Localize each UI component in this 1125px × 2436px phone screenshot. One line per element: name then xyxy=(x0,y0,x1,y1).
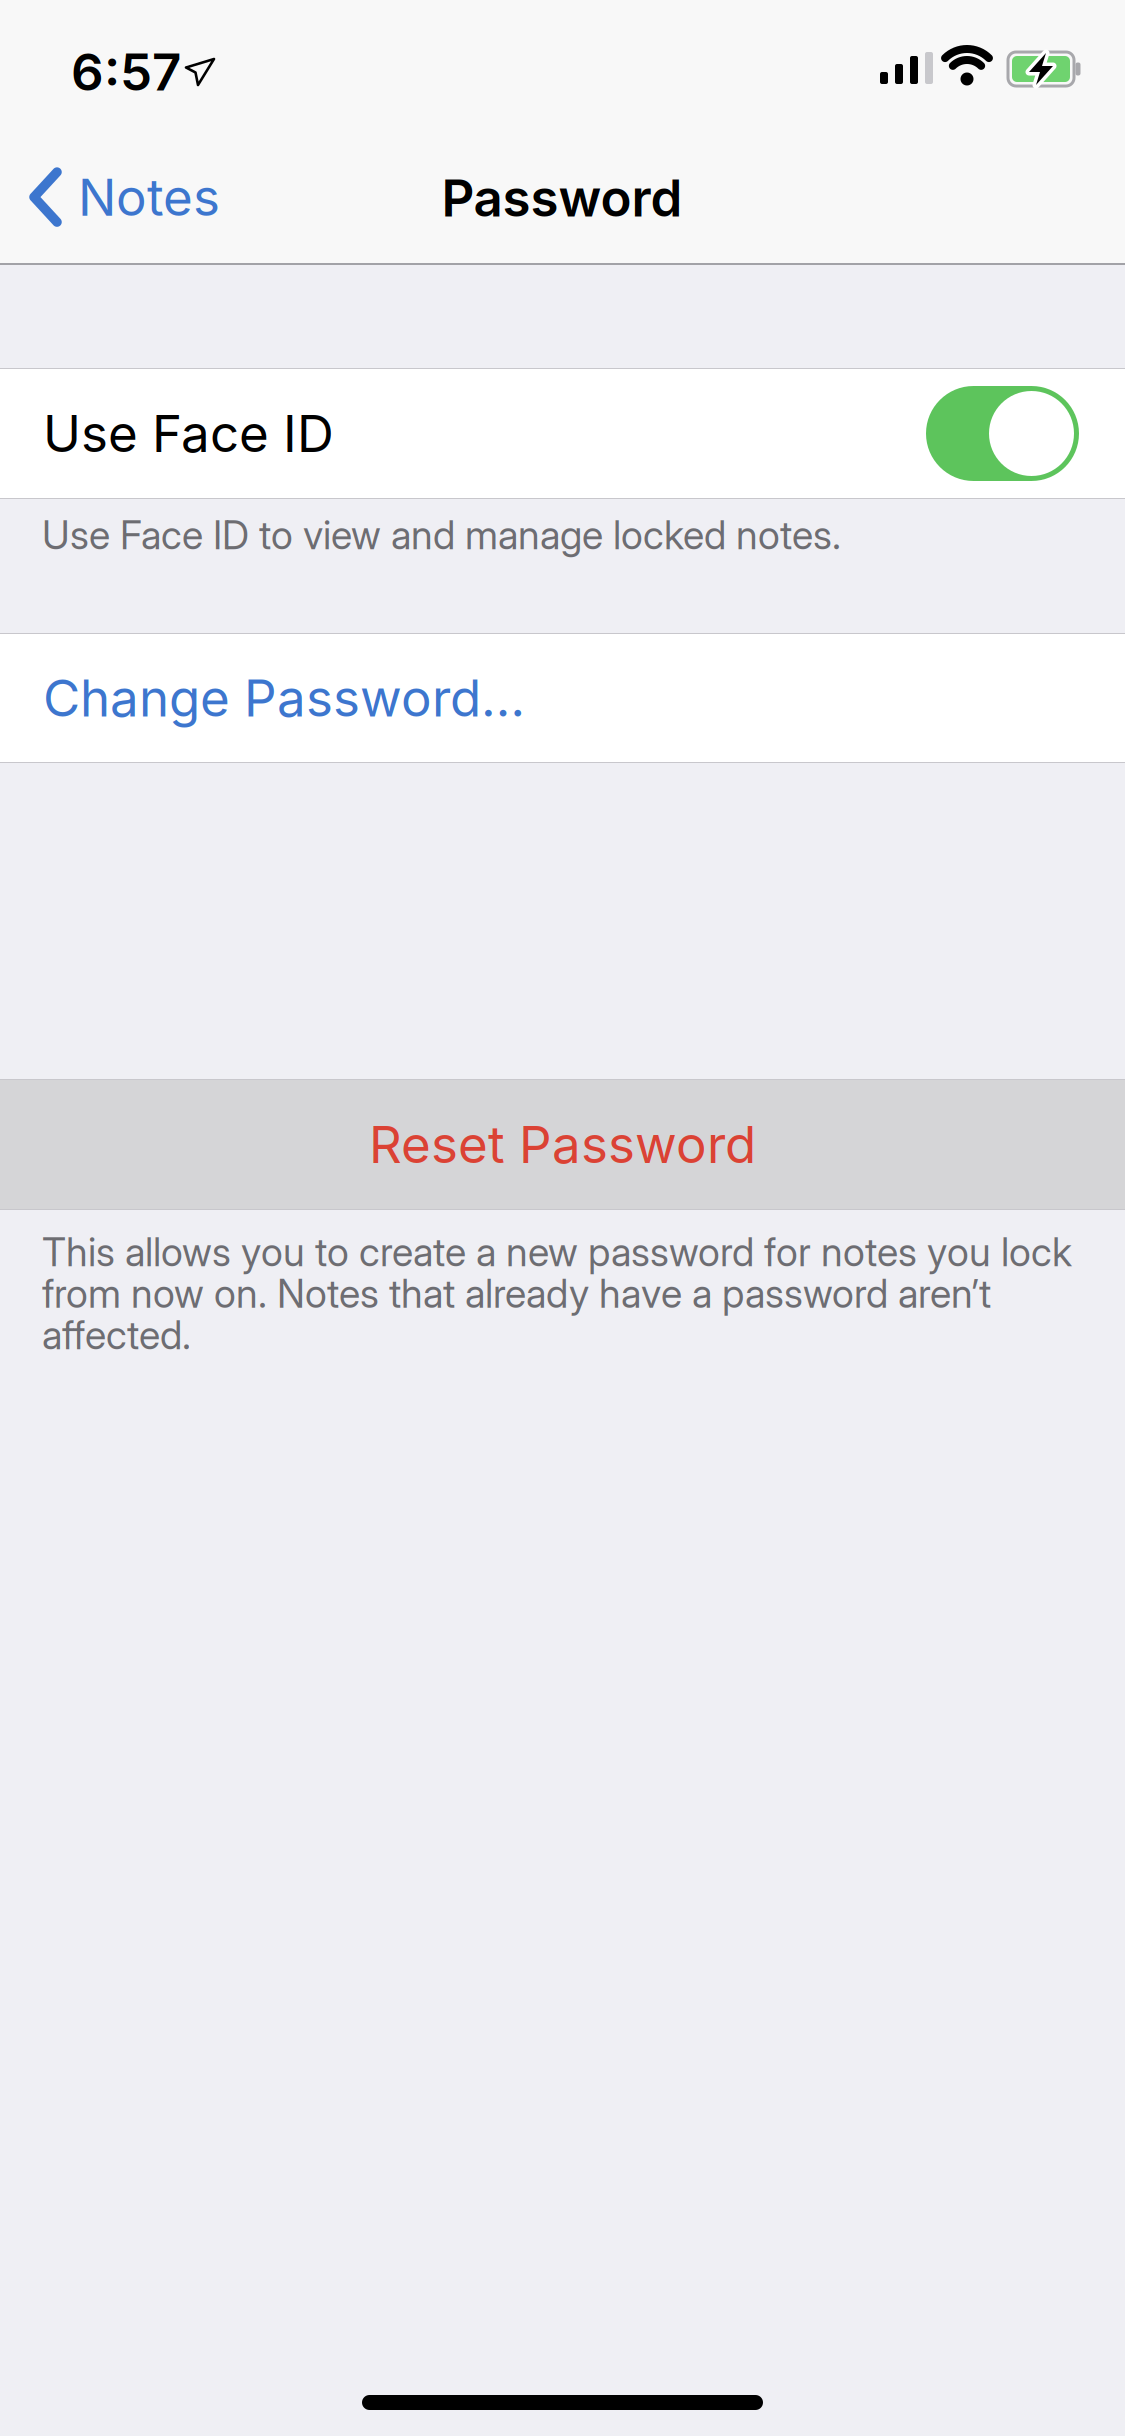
button[interactable]: Use Face ID xyxy=(926,386,1079,481)
button[interactable]: Change Password… xyxy=(0,633,1125,763)
staticText: 6:57 xyxy=(71,42,181,102)
button[interactable]: Back to Notes xyxy=(0,132,220,227)
staticText: Change Password… xyxy=(43,668,525,728)
staticText: This allows you to create a new password… xyxy=(42,1229,1072,1275)
button[interactable]: Reset Password xyxy=(0,1079,1125,1210)
staticText: Notes xyxy=(78,167,220,227)
staticText: affected. xyxy=(42,1312,191,1358)
staticText: from now on. Notes that already have a p… xyxy=(42,1270,991,1316)
staticText: Use Face ID to view and manage locked no… xyxy=(42,512,841,558)
staticText: Reset Password xyxy=(369,1114,756,1175)
staticText: Use Face ID xyxy=(43,403,334,464)
staticText: Password xyxy=(441,168,682,228)
